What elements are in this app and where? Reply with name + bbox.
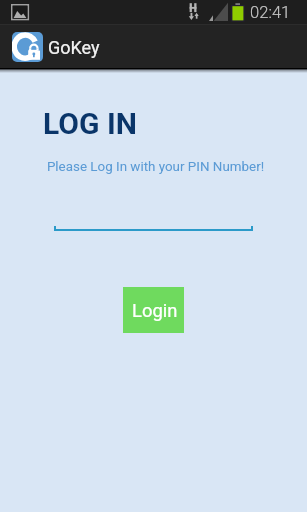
button[interactable]: PIN number input field bbox=[0, 205, 307, 231]
other: GoKey logo bbox=[12, 32, 43, 62]
button[interactable]: GoKey logo bbox=[12, 32, 100, 62]
staticText: GoKey bbox=[48, 37, 100, 58]
button[interactable]: Login bbox=[123, 287, 184, 333]
other: Screenshot captured bbox=[11, 4, 29, 22]
staticText: Login bbox=[132, 300, 178, 322]
staticText: 02:41 bbox=[250, 3, 291, 22]
staticText: Please Log In with your PIN Number! bbox=[2, 159, 307, 175]
staticText: LOG IN bbox=[43, 106, 137, 141]
